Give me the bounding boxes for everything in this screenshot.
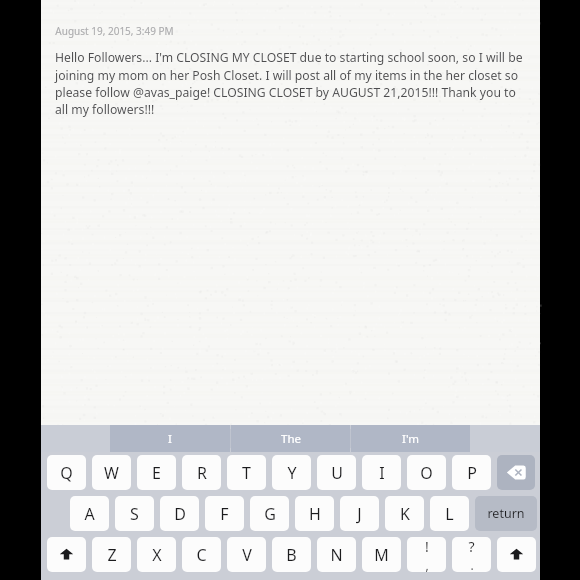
button[interactable]: F — [205, 496, 244, 531]
staticText: S — [130, 503, 139, 525]
button[interactable]: Q — [47, 455, 86, 490]
staticText: Z — [107, 544, 117, 566]
staticText: O — [420, 462, 433, 484]
button[interactable]: Shift — [47, 537, 86, 572]
staticText: Q — [60, 462, 73, 484]
button[interactable]: Y — [272, 455, 311, 490]
staticText: The — [281, 431, 301, 447]
staticText: E — [152, 462, 161, 484]
button[interactable]: ? — [452, 537, 491, 572]
staticText: K — [400, 503, 410, 525]
button[interactable]: V — [227, 537, 266, 572]
staticText: Y — [287, 462, 297, 484]
button[interactable]: Delete — [497, 455, 535, 490]
staticText: V — [242, 544, 252, 566]
staticText: I — [168, 431, 172, 447]
button[interactable]: L — [430, 496, 469, 531]
button[interactable]: U — [317, 455, 356, 490]
staticText: X — [152, 544, 162, 566]
staticText: I'm — [402, 431, 419, 447]
staticText: T — [242, 462, 251, 484]
button[interactable]: X — [137, 537, 176, 572]
button[interactable]: The — [231, 425, 350, 452]
button[interactable]: R — [182, 455, 221, 490]
staticText: . — [470, 557, 474, 572]
button[interactable]: A — [70, 496, 109, 531]
staticText: ? — [468, 537, 475, 556]
button[interactable]: B — [272, 537, 311, 572]
staticText: , — [425, 557, 429, 572]
button[interactable]: S — [115, 496, 154, 531]
button[interactable]: E — [137, 455, 176, 490]
button[interactable]: ! — [407, 537, 446, 572]
button[interactable]: return — [475, 496, 537, 531]
staticText: D — [174, 503, 186, 525]
staticText: N — [330, 544, 343, 566]
staticText: J — [357, 503, 362, 525]
staticText: return — [487, 505, 525, 522]
button[interactable]: D — [160, 496, 199, 531]
button[interactable]: I'm — [351, 425, 470, 452]
button[interactable]: N — [317, 537, 356, 572]
button[interactable]: P — [452, 455, 491, 490]
staticText: W — [104, 462, 119, 484]
staticText: A — [84, 503, 95, 525]
button[interactable]: Z — [92, 537, 131, 572]
staticText: B — [286, 544, 297, 566]
button[interactable]: C — [182, 537, 221, 572]
button[interactable]: I — [110, 425, 230, 452]
button[interactable]: T — [227, 455, 266, 490]
button[interactable]: H — [295, 496, 334, 531]
staticText: I — [379, 462, 385, 484]
button[interactable]: I — [362, 455, 401, 490]
button[interactable]: J — [340, 496, 379, 531]
staticText: ! — [425, 537, 429, 556]
button[interactable]: K — [385, 496, 424, 531]
button[interactable]: O — [407, 455, 446, 490]
staticText: H — [309, 503, 321, 525]
button[interactable]: M — [362, 537, 401, 572]
staticText: R — [197, 462, 207, 484]
staticText: P — [467, 462, 477, 484]
staticText: F — [220, 503, 229, 525]
staticText: L — [445, 503, 454, 525]
staticText: G — [264, 503, 276, 525]
button[interactable]: G — [250, 496, 289, 531]
staticText: August 19, 2015, 3:49 PM — [55, 24, 174, 38]
button[interactable]: W — [92, 455, 131, 490]
button[interactable]: Shift — [497, 537, 536, 572]
staticText: Hello Followers... I'm CLOSING MY CLOSET… — [55, 49, 524, 117]
staticText: M — [374, 544, 389, 566]
staticText: C — [196, 544, 207, 566]
staticText: U — [331, 462, 343, 484]
